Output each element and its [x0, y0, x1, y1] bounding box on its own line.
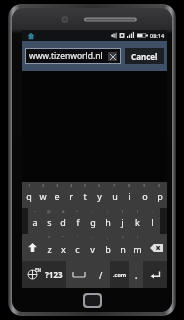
button[interactable]: # [56, 208, 70, 234]
button[interactable]: shift [22, 234, 42, 261]
button[interactable]: Cancel [131, 48, 158, 64]
staticText: ?123 [45, 269, 63, 280]
staticText: u [112, 190, 118, 202]
staticText: n [120, 243, 126, 255]
button[interactable]: Clear [108, 52, 117, 61]
button[interactable]: 0 [152, 182, 167, 208]
staticText: . [135, 269, 138, 281]
button[interactable]: : [85, 208, 100, 234]
button[interactable]: 7 [107, 182, 122, 208]
button[interactable]: Space [66, 261, 92, 288]
button[interactable]: Change language [22, 261, 42, 288]
staticText: Cancel [131, 51, 158, 62]
staticText: p [157, 190, 163, 202]
button[interactable]: ^ [70, 208, 85, 234]
staticText: j [121, 216, 124, 228]
staticText: f [76, 216, 80, 228]
staticText: ^ [76, 209, 79, 214]
staticText: b [105, 243, 111, 255]
button[interactable]: 4 [64, 182, 78, 208]
button[interactable]: Home [83, 293, 102, 308]
staticText: h [105, 216, 111, 228]
staticText: 3 [56, 183, 59, 188]
staticText: 5 [84, 183, 87, 188]
button[interactable]: 5 [78, 182, 92, 208]
staticText: q [26, 190, 32, 202]
button[interactable]: ? [115, 234, 130, 261]
staticText: 0 [158, 183, 161, 188]
button[interactable]: 8 [122, 182, 137, 208]
staticText: t [83, 190, 87, 202]
button[interactable]: - [145, 208, 160, 234]
staticText: a [32, 216, 38, 228]
staticText: ) [137, 209, 139, 214]
button[interactable]: : [85, 234, 100, 261]
button[interactable]: . [129, 261, 143, 288]
staticText: z [47, 243, 52, 255]
button[interactable]: 6 [92, 182, 107, 208]
staticText: - [152, 209, 154, 214]
staticText: : [92, 235, 94, 240]
staticText: e [54, 190, 60, 202]
staticText: 1 [28, 183, 31, 188]
button[interactable]: " [56, 234, 70, 261]
button[interactable]: ' [70, 234, 85, 261]
staticText: : [92, 209, 94, 214]
staticText: 2 [42, 183, 45, 188]
button[interactable]: * [42, 234, 56, 261]
staticText: # [62, 209, 65, 214]
staticText: m [133, 243, 142, 255]
staticText: @ [47, 209, 51, 214]
staticText: y [97, 190, 102, 202]
staticText: d [60, 216, 66, 228]
staticText: k [135, 216, 140, 228]
staticText: 8 [128, 183, 131, 188]
button[interactable]: .com [110, 261, 129, 288]
staticText: r [69, 190, 73, 202]
staticText: ~ [34, 209, 37, 214]
staticText: / [99, 269, 103, 281]
button[interactable]: 3 [50, 182, 64, 208]
button[interactable]: Enter [143, 261, 167, 288]
staticText: * [48, 235, 51, 240]
staticText: ? [122, 235, 124, 240]
staticText: ! [137, 235, 139, 240]
button[interactable]: @ [42, 208, 56, 234]
staticText: 7 [113, 183, 116, 188]
staticText: ; [107, 209, 109, 214]
staticText: c [75, 243, 80, 255]
staticText: ' [77, 235, 78, 240]
button[interactable]: / [92, 261, 110, 288]
staticText: 6 [98, 183, 101, 188]
staticText: ( [122, 209, 124, 214]
button[interactable]: ; [100, 234, 115, 261]
button[interactable]: www.tizenworld.nl [26, 49, 120, 63]
button[interactable]: Backspace [145, 234, 167, 261]
staticText: o [142, 190, 148, 202]
button[interactable]: ; [100, 208, 115, 234]
staticText: g [90, 216, 96, 228]
button[interactable]: 1 [22, 182, 36, 208]
staticText: 9 [143, 183, 146, 188]
staticText: .com [113, 271, 127, 278]
staticText: " [62, 235, 64, 240]
staticText: 08:14 [150, 32, 165, 39]
button[interactable]: ?123 [42, 261, 66, 288]
staticText: i [128, 190, 131, 202]
button[interactable]: ) [130, 208, 145, 234]
staticText: s [47, 216, 52, 228]
button[interactable]: 9 [137, 182, 152, 208]
button[interactable]: ( [115, 208, 130, 234]
staticText: 4 [70, 183, 73, 188]
staticText: v [90, 243, 95, 255]
staticText: www.tizenworld.nl [29, 50, 108, 62]
staticText: l [151, 216, 154, 228]
button[interactable]: ! [130, 234, 145, 261]
staticText: x [61, 243, 66, 255]
staticText: EN [35, 267, 42, 273]
staticText: ; [107, 235, 109, 240]
staticText: w [39, 190, 47, 202]
button[interactable]: 2 [36, 182, 50, 208]
button[interactable]: ~ [28, 208, 42, 234]
